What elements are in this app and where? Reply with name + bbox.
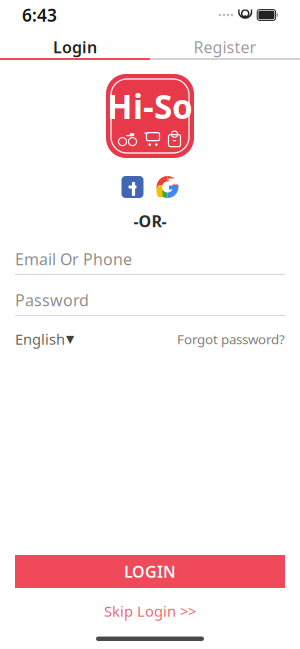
button[interactable]: Sign in with Google xyxy=(156,176,178,198)
button[interactable]: Sign in with Facebook xyxy=(121,176,143,198)
button[interactable]: English xyxy=(15,330,74,348)
staticText: Email Or Phone xyxy=(15,248,132,270)
staticText: -OR- xyxy=(133,210,166,232)
button[interactable]: Register xyxy=(150,36,300,58)
staticText: Register xyxy=(193,36,256,58)
staticText: Password xyxy=(15,289,89,311)
staticText: English xyxy=(15,329,65,349)
staticText: Hi-So xyxy=(107,84,193,128)
staticText: Login xyxy=(53,36,97,58)
button[interactable]: Login xyxy=(0,36,150,58)
button[interactable]: LOGIN xyxy=(15,555,285,588)
staticText: ▼ xyxy=(66,333,74,345)
button[interactable]: Forgot password? xyxy=(177,330,285,348)
staticText: Skip Login >> xyxy=(104,601,196,621)
staticText: Forgot password? xyxy=(177,330,285,348)
staticText: LOGIN xyxy=(124,561,176,582)
button[interactable]: Skip Login >> xyxy=(104,602,196,620)
staticText: 6:43 xyxy=(22,3,57,26)
